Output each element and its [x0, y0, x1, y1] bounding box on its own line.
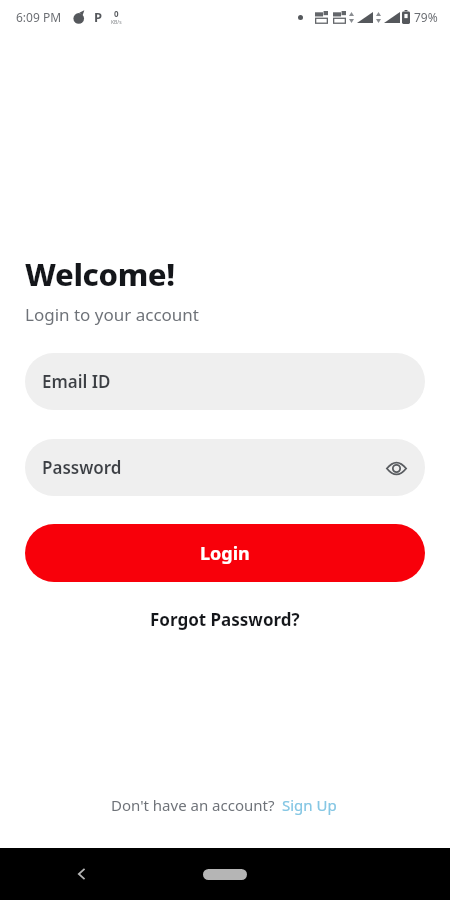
button[interactable]: Show password: [379, 451, 413, 485]
staticText: Login to your account: [25, 303, 199, 326]
staticText: KB/s: [111, 19, 122, 26]
staticText: Don't have an account?: [111, 795, 275, 815]
button[interactable]: Password: [25, 439, 425, 496]
staticText: Forgot Password?: [150, 608, 300, 631]
staticText: Login: [200, 541, 250, 566]
staticText: Sign Up: [282, 795, 337, 815]
button[interactable]: Forgot Password?: [142, 604, 308, 635]
staticText: 6:09 PM: [16, 9, 62, 25]
staticText: 79%: [414, 9, 438, 25]
button[interactable]: Back: [62, 854, 102, 894]
button[interactable]: Email ID: [25, 353, 425, 410]
button[interactable]: Login: [25, 524, 425, 582]
staticText: 0: [114, 8, 119, 19]
button[interactable]: Home: [195, 862, 255, 886]
button[interactable]: Sign Up: [280, 793, 339, 817]
staticText: P: [94, 8, 103, 26]
staticText: Email ID: [42, 370, 111, 393]
staticText: Welcome!: [25, 253, 175, 295]
staticText: Password: [42, 456, 122, 479]
